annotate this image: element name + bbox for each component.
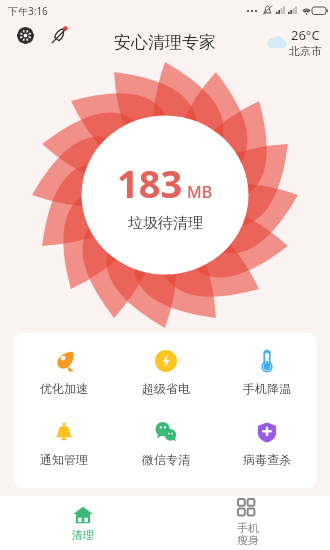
button[interactable]: 清理 (72, 504, 94, 542)
staticText: 手机 瘦身 (237, 521, 259, 547)
staticText: 病毒查杀 (243, 452, 291, 467)
button[interactable]: 病毒查杀 (216, 416, 317, 471)
staticText: 清理 (72, 528, 94, 542)
staticText: 微信专清 (142, 452, 190, 467)
staticText: 183 (117, 157, 183, 209)
button[interactable]: Settings (12, 22, 38, 48)
staticText: 下午3:16 (8, 4, 48, 18)
staticText: 超级省电 (142, 381, 190, 396)
staticText: 北京市 (289, 44, 322, 58)
button[interactable]: 手机 瘦身 (237, 499, 259, 547)
staticText: 手机降温 (243, 381, 291, 396)
staticText: MB (187, 181, 213, 203)
button[interactable]: 通知管理 (13, 416, 115, 471)
staticText: 通知管理 (40, 452, 88, 467)
button[interactable]: 超级省电 (115, 345, 216, 400)
staticText: 优化加速 (40, 381, 88, 396)
staticText: 安心清理专家 (114, 32, 216, 53)
staticText: 垃圾待清理 (128, 214, 203, 233)
button[interactable]: Boost (46, 22, 72, 48)
button[interactable]: 优化加速 (13, 345, 115, 400)
button[interactable]: 26°C (265, 26, 322, 58)
button[interactable]: 手机降温 (216, 345, 317, 400)
button[interactable]: 微信专清 (115, 416, 216, 471)
staticText: 26°C (291, 26, 320, 44)
